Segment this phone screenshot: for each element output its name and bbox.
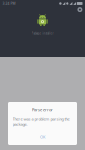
staticText: 3:24 PM [2,1,15,6]
staticText: OK [40,134,45,139]
button[interactable]: OK [12,133,72,141]
staticText: Package installer [31,32,53,35]
staticText: Parse error [32,107,53,112]
staticText: There was a problem parsing the package. [12,116,69,127]
button[interactable]: Settings [75,5,84,14]
